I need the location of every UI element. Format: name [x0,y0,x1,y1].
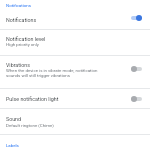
staticText: Labels [6,143,19,148]
staticText: High priority only [6,42,39,47]
other: Toggle off [131,96,142,102]
button[interactable]: Notifications [0,9,150,29]
button[interactable]: Pulse notification light [0,89,150,108]
button[interactable]: Sound [0,109,150,134]
other: Toggle off [131,66,142,72]
staticText: Sound [6,116,21,122]
staticText: Notification level [6,36,46,42]
staticText: Pulse notification light [6,96,59,102]
staticText: Vibrations [6,62,30,68]
staticText: Notifications [6,17,37,23]
button[interactable]: Notification level [0,30,150,55]
staticText: Default ringtone (Chime) [6,123,54,128]
staticText: When the device is in vibrate mode, noti… [6,68,110,78]
button[interactable]: Vibrations [0,56,150,88]
other: Toggle on [131,15,142,21]
staticText: Notifications [6,3,31,8]
